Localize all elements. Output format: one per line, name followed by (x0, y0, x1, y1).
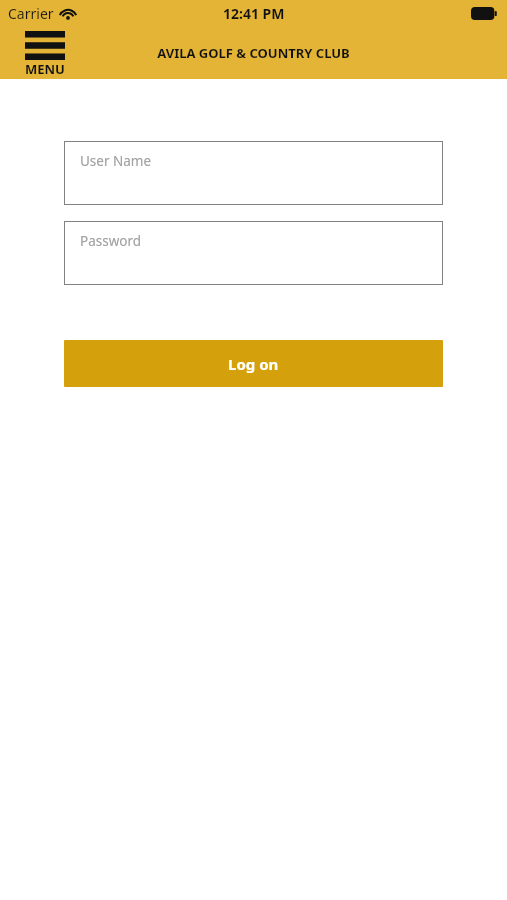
staticText: User Name (80, 152, 152, 170)
staticText: Password (80, 232, 142, 250)
staticText: Carrier (8, 4, 54, 23)
staticText: MENU (25, 60, 65, 77)
button[interactable]: Log on (64, 340, 443, 387)
button[interactable]: Menu (0, 26, 73, 79)
staticText: Log on (228, 354, 279, 374)
button[interactable]: User Name (64, 141, 443, 205)
staticText: AVILA GOLF & COUNTRY CLUB (157, 44, 350, 62)
staticText: 12:41 PM (223, 4, 285, 23)
button[interactable]: Password (64, 221, 443, 285)
